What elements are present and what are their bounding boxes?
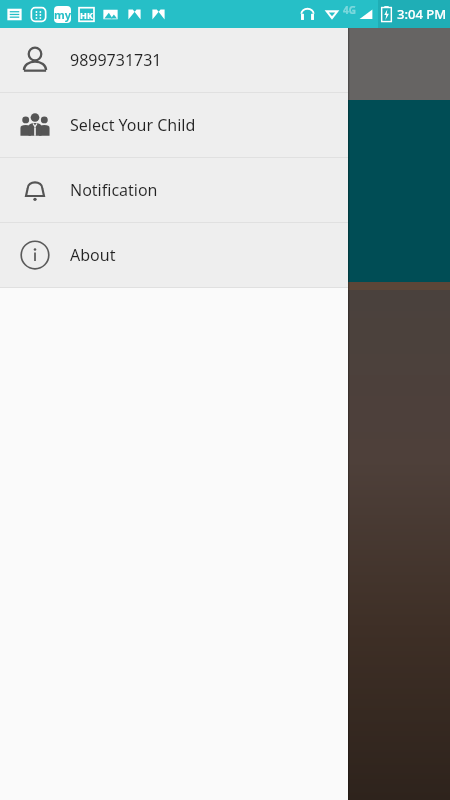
staticText: Notification: [70, 179, 158, 201]
button[interactable]: About: [0, 223, 348, 287]
staticText: Select Your Child: [70, 114, 196, 136]
button[interactable]: 9899731731: [0, 28, 348, 92]
staticText: HK: [80, 9, 93, 21]
staticText: About: [70, 244, 116, 266]
staticText: 3:04 PM: [397, 5, 447, 23]
other: Wi-Fi: [324, 6, 340, 22]
staticText: my: [54, 7, 71, 22]
staticText: 4G: [343, 3, 356, 17]
button[interactable]: Notification: [0, 158, 348, 222]
button[interactable]: Select Your Child: [0, 93, 348, 157]
other: Signal strength: [358, 6, 374, 22]
staticText: 9899731731: [70, 49, 162, 71]
other: Headset connected: [299, 6, 316, 23]
